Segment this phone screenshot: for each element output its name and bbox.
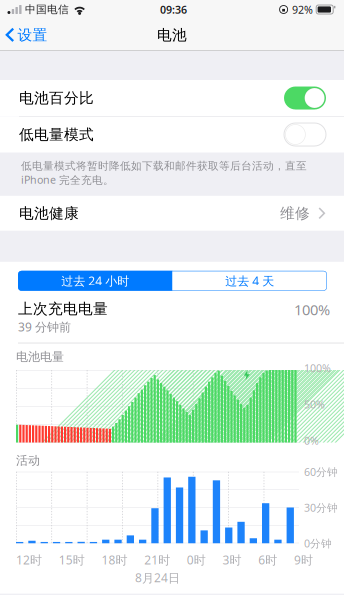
staticText: 30分钟 [304,500,338,515]
staticText: 过去 4 天 [225,273,274,289]
staticText: 92% [292,2,313,17]
staticText: 0% [304,433,319,448]
staticText: 0分钟 [304,536,332,550]
staticText: 活动 [16,453,40,468]
staticText: 21时 [144,552,170,568]
staticText: 低电量模式 [19,125,94,143]
staticText: 中国电信 [25,3,69,16]
staticText: 0时 [187,552,206,568]
button[interactable]: 过去 4 天 [172,271,327,291]
staticText: 50% [304,397,325,411]
staticText: 9时 [294,552,313,568]
staticText: 电池 [157,26,187,44]
staticText: 设置 [17,26,47,44]
button[interactable]: 低电量模式 [0,116,344,152]
staticText: 12时 [16,552,42,568]
staticText: 维修 [280,204,310,222]
staticText: 过去 24 小时 [61,273,129,289]
button[interactable]: 电池健康 [0,196,344,231]
staticText: 6时 [258,552,277,568]
staticText: 15时 [59,552,85,568]
staticText: 100% [304,361,331,375]
staticText: 电池健康 [19,204,79,222]
staticText: 上次充电电量 [18,300,108,318]
button[interactable]: 设置 [0,19,55,50]
staticText: 8月24日 [135,570,180,586]
staticText: 低电量模式将暂时降低如下载和邮件获取等后台活动，直至 iPhone 完全充电。 [21,159,307,187]
staticText: 09:36 [160,2,187,17]
staticText: 60分钟 [304,465,338,479]
staticText: 18时 [101,552,127,568]
staticText: 电池电量 [16,349,64,364]
staticText: 39 分钟前 [18,319,71,335]
staticText: 电池百分比 [19,89,94,107]
staticText: 3时 [223,552,242,568]
button[interactable]: 电池百分比 [0,80,344,116]
button[interactable]: 过去 24 小时 [18,271,172,291]
staticText: 100% [294,300,330,319]
